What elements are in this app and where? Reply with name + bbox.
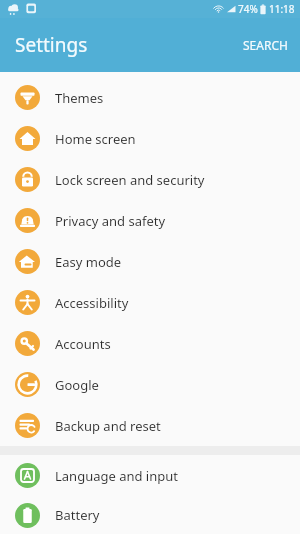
button[interactable]: Battery bbox=[0, 496, 300, 534]
other: Lock screen and security bbox=[15, 167, 40, 192]
button[interactable]: Google bbox=[0, 364, 300, 405]
staticText: SEARCH bbox=[243, 37, 288, 53]
staticText: Lock screen and security bbox=[55, 171, 205, 189]
other: Google bbox=[15, 372, 40, 397]
other: Accessibility bbox=[15, 290, 40, 315]
other: Privacy and safety bbox=[15, 208, 40, 233]
staticText: Language and input bbox=[55, 467, 178, 485]
staticText: Home screen bbox=[55, 130, 136, 148]
button[interactable]: Home screen bbox=[0, 118, 300, 159]
button[interactable]: SEARCH bbox=[231, 25, 300, 65]
button[interactable]: Backup and reset bbox=[0, 405, 300, 446]
staticText: Settings bbox=[15, 32, 88, 58]
staticText: Accessibility bbox=[55, 294, 129, 312]
button[interactable]: Themes bbox=[0, 77, 300, 118]
other: Language and input bbox=[15, 463, 40, 488]
staticText: Privacy and safety bbox=[55, 212, 166, 230]
button[interactable]: Easy mode bbox=[0, 241, 300, 282]
staticText: Battery bbox=[55, 506, 100, 524]
staticText: Backup and reset bbox=[55, 417, 161, 435]
button[interactable]: Privacy and safety bbox=[0, 200, 300, 241]
staticText: Themes bbox=[55, 89, 104, 107]
other: Backup and reset bbox=[15, 413, 40, 438]
staticText: 74% bbox=[238, 2, 258, 16]
staticText: Google bbox=[55, 376, 99, 394]
other: Easy mode bbox=[15, 249, 40, 274]
button[interactable]: Lock screen and security bbox=[0, 159, 300, 200]
other: Home screen bbox=[15, 126, 40, 151]
staticText: Easy mode bbox=[55, 253, 122, 271]
staticText: 11:18 bbox=[269, 2, 295, 16]
other: Accounts bbox=[15, 331, 40, 356]
button[interactable]: Accounts bbox=[0, 323, 300, 364]
other: Themes bbox=[15, 85, 40, 110]
button[interactable]: Language and input bbox=[0, 455, 300, 496]
other: Battery bbox=[15, 503, 40, 528]
button[interactable]: Accessibility bbox=[0, 282, 300, 323]
staticText: Accounts bbox=[55, 335, 111, 353]
